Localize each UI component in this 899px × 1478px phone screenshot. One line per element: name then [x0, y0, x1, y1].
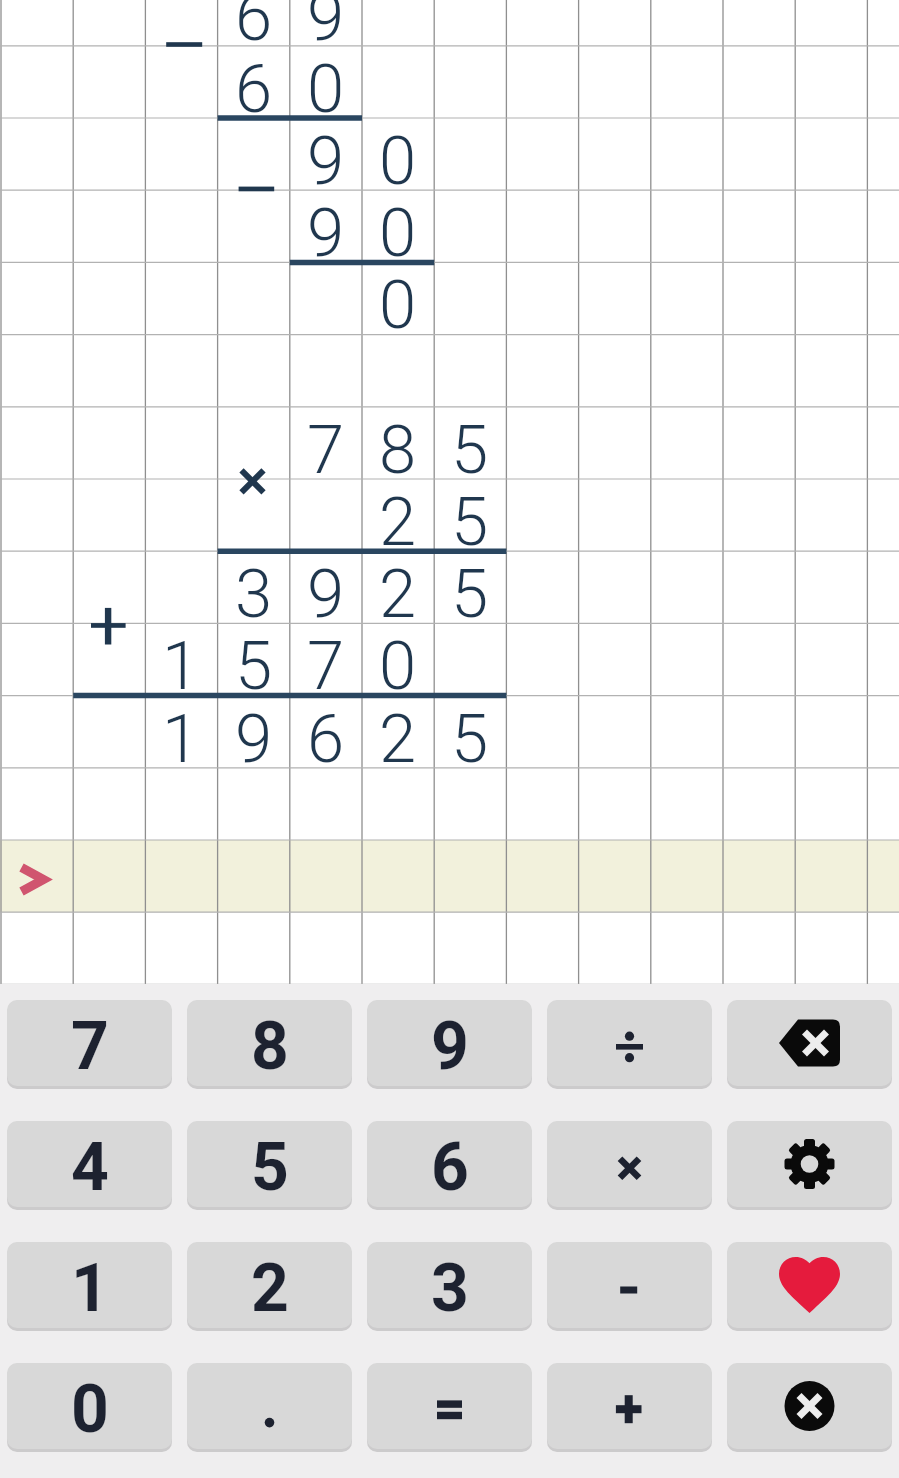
staticText: 7	[307, 627, 345, 699]
staticText: 0	[379, 194, 417, 266]
staticText: 0	[379, 122, 417, 194]
staticText: 9	[307, 194, 345, 266]
button[interactable]: 9	[367, 1000, 532, 1086]
staticText: 7	[71, 1008, 109, 1085]
staticText: 2	[379, 555, 417, 627]
staticText: 5	[451, 555, 489, 627]
button[interactable]	[547, 1000, 712, 1086]
staticText: 8	[251, 1008, 289, 1085]
staticText: 5	[235, 627, 273, 699]
button[interactable]	[727, 1121, 892, 1207]
staticText: 9	[307, 555, 345, 627]
staticText: 5	[451, 700, 489, 772]
staticText: 6	[235, 50, 273, 122]
button[interactable]: 7	[7, 1000, 172, 1086]
button[interactable]	[547, 1363, 712, 1449]
button[interactable]: 4	[7, 1121, 172, 1207]
staticText: 1	[162, 700, 200, 772]
staticText: 3	[431, 1250, 469, 1327]
button[interactable]	[727, 1363, 892, 1449]
staticText: 0	[379, 266, 417, 338]
staticText: 9	[307, 122, 345, 194]
staticText: 9	[431, 1008, 469, 1085]
staticText: 2	[379, 700, 417, 772]
staticText: 3	[235, 555, 273, 627]
staticText: 5	[451, 411, 489, 483]
staticText: 9	[235, 700, 273, 772]
staticText: 0	[379, 627, 417, 699]
staticText: 1	[162, 627, 200, 699]
button[interactable]: 2	[187, 1242, 352, 1328]
button[interactable]	[547, 1242, 712, 1328]
staticText: 4	[71, 1129, 109, 1206]
button[interactable]	[727, 1000, 892, 1086]
staticText: 6	[235, 0, 273, 50]
button[interactable]: 6	[367, 1121, 532, 1207]
button[interactable]	[367, 1363, 532, 1449]
staticText: 9	[307, 0, 345, 50]
staticText: 1	[71, 1250, 109, 1327]
button[interactable]	[187, 1363, 352, 1449]
button[interactable]: 3	[367, 1242, 532, 1328]
staticText: 6	[307, 700, 345, 772]
staticText: 0	[307, 50, 345, 122]
button[interactable]: 0	[7, 1363, 172, 1449]
staticText: 5	[451, 483, 489, 555]
button[interactable]: 1	[7, 1242, 172, 1328]
staticText: 5	[251, 1129, 289, 1206]
button[interactable]: 5	[187, 1121, 352, 1207]
staticText: 0	[71, 1371, 109, 1448]
button[interactable]: 8	[187, 1000, 352, 1086]
staticText: 6	[431, 1129, 469, 1206]
staticText: 8	[379, 411, 417, 483]
staticText: 2	[251, 1250, 289, 1327]
button[interactable]	[727, 1242, 892, 1328]
button[interactable]	[547, 1121, 712, 1207]
staticText: 2	[379, 483, 417, 555]
staticText: 7	[307, 411, 345, 483]
